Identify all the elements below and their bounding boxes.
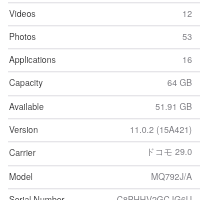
- staticText: 12: [182, 7, 192, 19]
- button[interactable]: Serial Number: [0, 188, 200, 200]
- button[interactable]: Capacity: [0, 71, 200, 94]
- button[interactable]: Applications: [0, 48, 200, 71]
- staticText: 11.0.2 (15A421): [129, 123, 192, 135]
- staticText: Carrier: [9, 146, 36, 158]
- staticText: Serial Number: [9, 193, 65, 200]
- button[interactable]: Photos: [0, 25, 200, 48]
- staticText: 51.91 GB: [155, 100, 192, 112]
- staticText: C8PHHV2GCJG6U: [116, 193, 192, 200]
- staticText: 16: [182, 53, 192, 65]
- button[interactable]: Carrier: [0, 141, 200, 164]
- staticText: Available: [9, 100, 44, 112]
- staticText: Applications: [9, 53, 56, 65]
- staticText: 64 GB: [167, 76, 192, 88]
- staticText: Version: [9, 123, 39, 135]
- staticText: Model: [9, 170, 33, 182]
- staticText: MQ792J/A: [150, 170, 192, 182]
- staticText: Photos: [9, 30, 36, 42]
- staticText: Videos: [9, 7, 36, 19]
- button[interactable]: Model: [0, 165, 200, 188]
- staticText: ドコモ 29.0: [146, 145, 192, 158]
- button[interactable]: Version: [0, 118, 200, 141]
- button[interactable]: Videos: [0, 2, 200, 25]
- staticText: Capacity: [9, 76, 43, 88]
- button[interactable]: Available: [0, 95, 200, 118]
- staticText: 53: [182, 30, 192, 42]
